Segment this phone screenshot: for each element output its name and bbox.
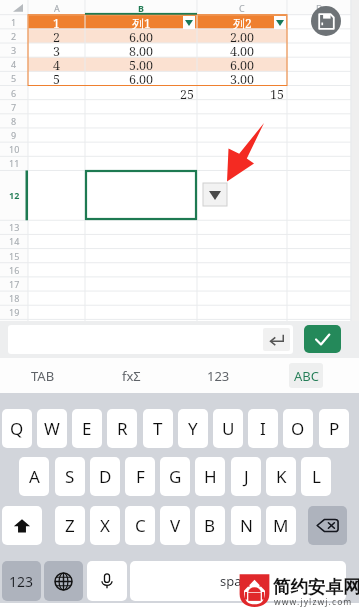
staticText: V bbox=[170, 514, 181, 537]
button[interactable]: N bbox=[231, 506, 261, 545]
staticText: 2 bbox=[11, 30, 17, 42]
button[interactable]: G bbox=[160, 457, 190, 496]
button[interactable]: 13 bbox=[0, 220, 28, 234]
button[interactable]: 123 bbox=[188, 358, 248, 393]
staticText: 18 bbox=[9, 292, 20, 304]
button[interactable]: B bbox=[195, 506, 225, 545]
button[interactable]: Shift bbox=[2, 506, 42, 545]
button[interactable]: U bbox=[213, 409, 243, 448]
button[interactable]: H bbox=[195, 457, 225, 496]
staticText: Z bbox=[65, 514, 75, 537]
staticText: D bbox=[99, 465, 112, 488]
button[interactable]: Filter bbox=[183, 16, 195, 29]
button[interactable]: 15 bbox=[0, 249, 28, 263]
button[interactable]: 11 bbox=[0, 156, 28, 170]
button[interactable]: V bbox=[160, 506, 190, 545]
button[interactable]: 7 bbox=[0, 100, 28, 114]
staticText: J bbox=[244, 465, 249, 488]
button[interactable]: O bbox=[283, 409, 313, 448]
button[interactable]: ABC bbox=[289, 363, 323, 388]
staticText: 3 bbox=[11, 44, 17, 56]
button[interactable]: C bbox=[197, 0, 287, 15]
staticText: F bbox=[136, 465, 145, 488]
button[interactable]: J bbox=[231, 457, 261, 496]
button[interactable]: space bbox=[130, 561, 346, 601]
button[interactable]: Open dropdown bbox=[203, 183, 227, 206]
staticText: B bbox=[204, 514, 216, 537]
button[interactable]: Y bbox=[178, 409, 208, 448]
button[interactable]: 12 bbox=[0, 170, 28, 220]
staticText: 10 bbox=[9, 143, 20, 155]
staticText: 6.00 bbox=[129, 71, 154, 85]
button[interactable]: E bbox=[72, 409, 102, 448]
button[interactable]: Save bbox=[311, 6, 341, 36]
staticText: C bbox=[239, 2, 245, 14]
staticText: 4 bbox=[53, 57, 60, 71]
button[interactable]: F bbox=[125, 457, 155, 496]
button[interactable]: 20 bbox=[0, 319, 28, 333]
button[interactable]: A bbox=[28, 0, 85, 15]
button[interactable]: 9 bbox=[0, 128, 28, 142]
button[interactable]: W bbox=[37, 409, 67, 448]
staticText: 17 bbox=[9, 278, 20, 290]
staticText: W bbox=[44, 417, 60, 440]
button[interactable]: M bbox=[266, 506, 296, 545]
staticText: 3 bbox=[53, 43, 60, 57]
staticText: 列1 bbox=[132, 15, 151, 29]
button[interactable]: Q bbox=[2, 409, 32, 448]
staticText: 15 bbox=[9, 250, 20, 262]
button[interactable]: 10 bbox=[0, 142, 28, 156]
button[interactable]: 2 bbox=[0, 29, 28, 43]
staticText: 3.00 bbox=[230, 71, 255, 85]
button[interactable]: Change language bbox=[44, 561, 83, 601]
button[interactable]: R bbox=[107, 409, 137, 448]
button[interactable]: Enter bbox=[8, 325, 293, 354]
staticText: 6.00 bbox=[129, 29, 154, 43]
button[interactable]: 4 bbox=[0, 57, 28, 71]
button[interactable]: S bbox=[55, 457, 85, 496]
button[interactable]: 6 bbox=[0, 86, 28, 100]
staticText: 9 bbox=[11, 129, 17, 141]
staticText: D bbox=[316, 2, 323, 14]
staticText: 1 bbox=[53, 15, 60, 29]
button[interactable]: 14 bbox=[0, 234, 28, 248]
button[interactable]: Confirm bbox=[304, 325, 341, 353]
staticText: K bbox=[276, 465, 287, 488]
button[interactable]: TAB bbox=[13, 358, 73, 393]
staticText: 5 bbox=[11, 72, 17, 84]
button[interactable]: 19 bbox=[0, 305, 28, 319]
staticText: 15 bbox=[270, 86, 284, 100]
button[interactable]: B bbox=[85, 0, 197, 15]
staticText: A bbox=[54, 2, 60, 14]
button[interactable]: P bbox=[319, 409, 349, 448]
button[interactable]: Backspace bbox=[308, 506, 347, 545]
staticText: 7 bbox=[11, 101, 17, 113]
button[interactable]: C bbox=[125, 506, 155, 545]
button[interactable]: 123 bbox=[2, 561, 41, 601]
button[interactable]: 18 bbox=[0, 291, 28, 305]
staticText: 11 bbox=[9, 157, 20, 169]
staticText: C bbox=[135, 514, 146, 537]
button[interactable]: 1 bbox=[0, 15, 28, 29]
button[interactable]: 8 bbox=[0, 114, 28, 128]
staticText: H bbox=[204, 465, 217, 488]
button[interactable]: D bbox=[90, 457, 120, 496]
button[interactable]: Enter bbox=[263, 328, 290, 351]
button[interactable]: 5 bbox=[0, 71, 28, 85]
button[interactable]: X bbox=[90, 506, 120, 545]
button[interactable]: A bbox=[19, 457, 49, 496]
button[interactable]: K bbox=[266, 457, 296, 496]
button[interactable]: Z bbox=[55, 506, 85, 545]
button[interactable]: 3 bbox=[0, 43, 28, 57]
button[interactable]: L bbox=[301, 457, 331, 496]
button[interactable]: D bbox=[287, 0, 351, 15]
button[interactable]: 16 bbox=[0, 263, 28, 277]
button[interactable] bbox=[85, 170, 197, 220]
button[interactable]: Voice input bbox=[87, 561, 127, 601]
button[interactable]: 17 bbox=[0, 277, 28, 291]
button[interactable]: T bbox=[143, 409, 173, 448]
staticText: TAB bbox=[31, 367, 55, 385]
button[interactable]: fxΣ bbox=[101, 358, 161, 393]
button[interactable]: I bbox=[248, 409, 278, 448]
button[interactable]: Filter bbox=[274, 16, 286, 29]
